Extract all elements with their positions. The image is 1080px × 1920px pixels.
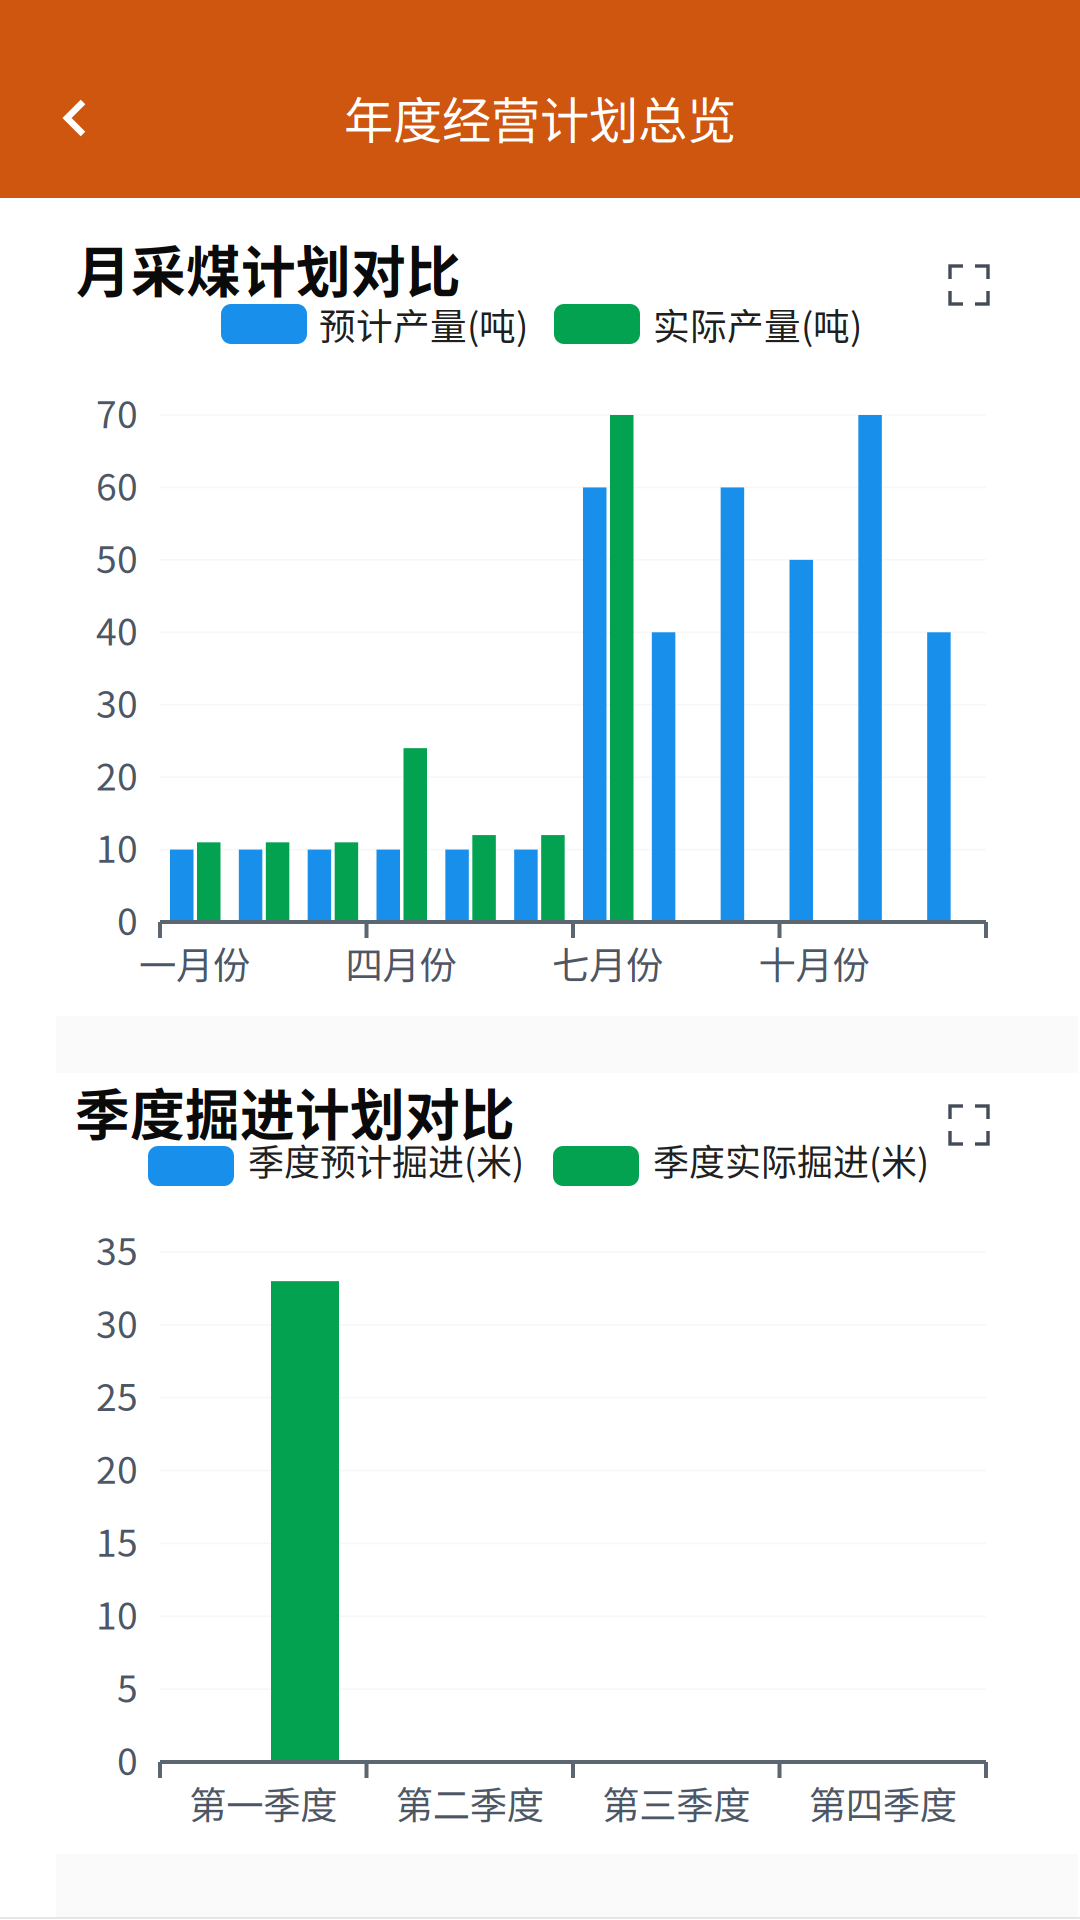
staticText: 季度掘进计划对比 [75, 1071, 515, 1151]
staticText: 第三季度 [602, 1776, 750, 1830]
staticText: 预计产量(吨) [319, 297, 528, 351]
staticText: 25 [96, 1368, 138, 1422]
staticText: 30 [96, 1295, 138, 1349]
staticText: 50 [96, 530, 138, 584]
staticText: 70 [96, 385, 138, 439]
staticText: 第一季度 [189, 1776, 337, 1830]
button[interactable]: Fullscreen [934, 1090, 1004, 1160]
staticText: 季度预计掘进(米) [248, 1134, 524, 1186]
staticText: 40 [96, 602, 138, 656]
staticText: 十月份 [758, 936, 869, 990]
staticText: 20 [96, 1440, 138, 1495]
staticText: 15 [96, 1513, 138, 1567]
button[interactable]: Back [15, 62, 135, 174]
staticText: 七月份 [552, 936, 663, 990]
staticText: 30 [96, 675, 138, 729]
button[interactable]: Fullscreen [934, 250, 1004, 320]
staticText: 实际产量(吨) [653, 297, 862, 351]
staticText: 月采煤计划对比 [76, 228, 461, 308]
staticText: 20 [96, 747, 138, 801]
staticText: 四月份 [345, 936, 456, 990]
staticText: 年度经营计划总览 [344, 81, 736, 153]
staticText: 35 [96, 1222, 138, 1276]
staticText: 0 [117, 892, 138, 946]
staticText: 第二季度 [396, 1776, 544, 1830]
staticText: 10 [96, 819, 138, 874]
staticText: 季度实际掘进(米) [653, 1134, 929, 1186]
staticText: 10 [96, 1586, 138, 1640]
staticText: 一月份 [139, 936, 250, 990]
staticText: 第四季度 [809, 1776, 957, 1830]
staticText: 60 [96, 457, 138, 511]
staticText: 0 [117, 1732, 138, 1786]
staticText: 5 [117, 1659, 138, 1713]
